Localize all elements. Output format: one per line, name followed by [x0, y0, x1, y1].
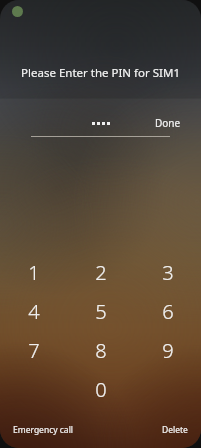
staticText: 1 [28, 259, 40, 286]
button[interactable]: Emergency call [8, 419, 79, 441]
staticText: Done [155, 116, 181, 130]
staticText: 2 [95, 259, 107, 286]
staticText: 6 [162, 298, 174, 325]
staticText: Please Enter the PIN for SIM1 [21, 65, 180, 81]
button[interactable]: 7 [0, 331, 67, 370]
button[interactable]: 4 [0, 292, 67, 331]
staticText: 5 [95, 298, 107, 325]
button[interactable]: 2 [67, 253, 134, 292]
button[interactable]: 6 [134, 292, 201, 331]
staticText: 0 [95, 376, 107, 403]
staticText: 8 [95, 337, 107, 364]
button[interactable]: 5 [67, 292, 134, 331]
button[interactable]: Done [150, 112, 186, 134]
button[interactable]: 8 [67, 331, 134, 370]
button[interactable]: 9 [134, 331, 201, 370]
button[interactable]: 3 [134, 253, 201, 292]
staticText: 4 [28, 298, 40, 325]
staticText: 9 [162, 337, 174, 364]
button[interactable]: 0 [67, 370, 134, 409]
staticText: 7 [28, 337, 40, 364]
staticText: Delete [162, 424, 188, 436]
staticText: Emergency call [13, 424, 74, 436]
staticText: 3 [162, 259, 174, 286]
other: Camera in use indicator [12, 6, 23, 17]
button[interactable]: 1 [0, 253, 67, 292]
button[interactable]: Delete [157, 419, 193, 441]
